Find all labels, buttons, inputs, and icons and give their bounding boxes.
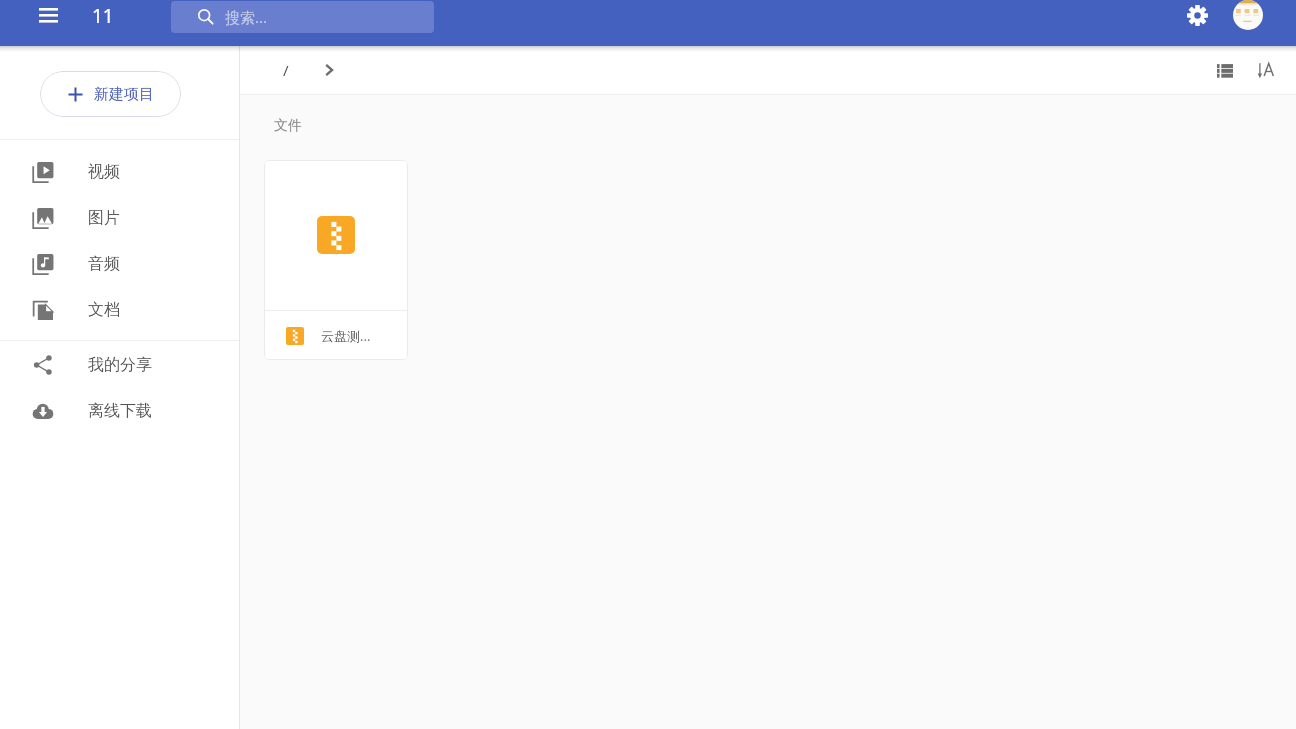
staticText: 云盘测... [321, 327, 371, 345]
staticText: 图片 [88, 208, 120, 228]
staticText: 文件 [274, 117, 302, 135]
button[interactable]: 新建项目 [40, 71, 181, 117]
button[interactable]: 离线下载 [0, 388, 239, 434]
button[interactable]: Forward [315, 56, 343, 84]
button[interactable]: Menu [32, 0, 64, 31]
staticText: 离线下载 [88, 401, 152, 421]
staticText: / [283, 60, 289, 80]
button[interactable]: 搜索... [171, 1, 434, 33]
staticText: 文档 [88, 300, 120, 320]
staticText: 11 [92, 3, 114, 29]
staticText: 我的分享 [88, 355, 152, 375]
staticText: 音频 [88, 254, 120, 274]
button[interactable]: Account [1233, 0, 1263, 30]
button[interactable]: Settings [1181, 0, 1213, 32]
button[interactable]: / [272, 56, 300, 84]
button[interactable]: 我的分享 [0, 342, 239, 388]
staticText: 新建项目 [94, 85, 154, 104]
button[interactable]: 云盘测... [264, 160, 408, 360]
button[interactable]: 图片 [0, 195, 239, 241]
staticText: 搜索... [225, 7, 268, 27]
button[interactable]: 视频 [0, 149, 239, 195]
button[interactable]: 文档 [0, 287, 239, 333]
button[interactable]: 音频 [0, 241, 239, 287]
button[interactable]: Sort [1250, 55, 1280, 85]
staticText: 视频 [88, 162, 120, 182]
button[interactable]: List view [1210, 55, 1240, 85]
